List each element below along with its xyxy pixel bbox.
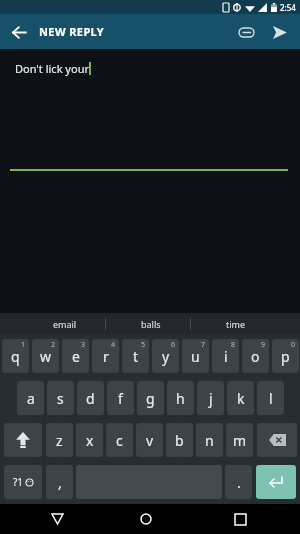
button[interactable]: ?1 — [4, 465, 42, 499]
staticText: n — [205, 431, 214, 450]
staticText: a — [27, 389, 35, 408]
button[interactable]: v — [136, 423, 163, 457]
button[interactable]: c — [106, 423, 133, 457]
button[interactable]: email — [22, 313, 108, 335]
staticText: 1 — [21, 340, 26, 350]
button[interactable]: e — [62, 339, 89, 373]
staticText: h — [176, 389, 185, 408]
button[interactable]: i — [212, 339, 239, 373]
staticText: u — [191, 347, 200, 366]
staticText: time — [226, 318, 246, 330]
button[interactable]: q — [2, 339, 29, 373]
button[interactable]: f — [107, 381, 134, 415]
staticText: , — [58, 473, 62, 492]
staticText: 7 — [201, 340, 206, 350]
button[interactable]: z — [46, 423, 73, 457]
staticText: NEW REPLY — [39, 24, 105, 39]
button[interactable]: j — [197, 381, 224, 415]
staticText: d — [86, 389, 95, 408]
staticText: r — [103, 347, 109, 366]
button[interactable] — [4, 423, 42, 457]
staticText: g — [146, 389, 155, 408]
button[interactable]: k — [227, 381, 254, 415]
staticText: balls — [141, 318, 161, 330]
button[interactable] — [42, 504, 72, 534]
staticText: l — [269, 389, 273, 408]
staticText: v — [146, 431, 154, 450]
staticText: t — [133, 347, 139, 366]
staticText: 3 — [81, 340, 86, 350]
staticText: 2:54 — [280, 2, 296, 13]
button[interactable]: h — [167, 381, 194, 415]
button[interactable]: s — [47, 381, 74, 415]
button[interactable]: a — [17, 381, 44, 415]
button[interactable] — [268, 20, 292, 44]
staticText: w — [40, 347, 52, 366]
button[interactable]: time — [193, 313, 278, 335]
button[interactable] — [8, 21, 30, 43]
button[interactable]: r — [92, 339, 119, 373]
staticText: . — [237, 473, 241, 492]
staticText: j — [209, 389, 213, 408]
staticText: Don't lick your — [15, 61, 89, 76]
staticText: e — [72, 347, 80, 366]
staticText: i — [224, 347, 228, 366]
button[interactable]: p — [272, 339, 299, 373]
staticText: 9 — [261, 340, 266, 350]
button[interactable]: g — [137, 381, 164, 415]
staticText: k — [237, 389, 245, 408]
button[interactable]: y — [152, 339, 179, 373]
staticText: 8 — [231, 340, 236, 350]
staticText: z — [56, 431, 63, 450]
button[interactable]: balls — [108, 313, 193, 335]
button[interactable]: o — [242, 339, 269, 373]
button[interactable]: . — [225, 465, 252, 499]
button[interactable]: l — [257, 381, 284, 415]
button[interactable]: w — [32, 339, 59, 373]
staticText: m — [233, 431, 247, 450]
staticText: q — [11, 347, 20, 366]
button[interactable] — [234, 20, 258, 44]
button[interactable]: b — [166, 423, 193, 457]
staticText: s — [57, 389, 64, 408]
button[interactable]: m — [226, 423, 253, 457]
staticText: p — [281, 347, 290, 366]
staticText: f — [118, 389, 123, 408]
button[interactable]: u — [182, 339, 209, 373]
button[interactable] — [257, 423, 297, 457]
staticText: 4 — [111, 340, 116, 350]
staticText: b — [175, 431, 184, 450]
button[interactable]: x — [76, 423, 103, 457]
staticText: x — [86, 431, 94, 450]
button[interactable]: d — [77, 381, 104, 415]
button[interactable] — [131, 504, 161, 534]
staticText: email — [53, 318, 77, 330]
staticText: o — [251, 347, 260, 366]
staticText: y — [162, 347, 170, 366]
button[interactable]: n — [196, 423, 223, 457]
button[interactable] — [256, 465, 296, 499]
button[interactable]: t — [122, 339, 149, 373]
button[interactable]: , — [46, 465, 73, 499]
staticText: ?1 — [13, 475, 24, 489]
staticText: 2 — [51, 340, 56, 350]
staticText: 5 — [141, 340, 146, 350]
staticText: 0 — [291, 340, 296, 350]
staticText: c — [116, 431, 123, 450]
staticText: 6 — [171, 340, 176, 350]
button[interactable] — [225, 504, 255, 534]
